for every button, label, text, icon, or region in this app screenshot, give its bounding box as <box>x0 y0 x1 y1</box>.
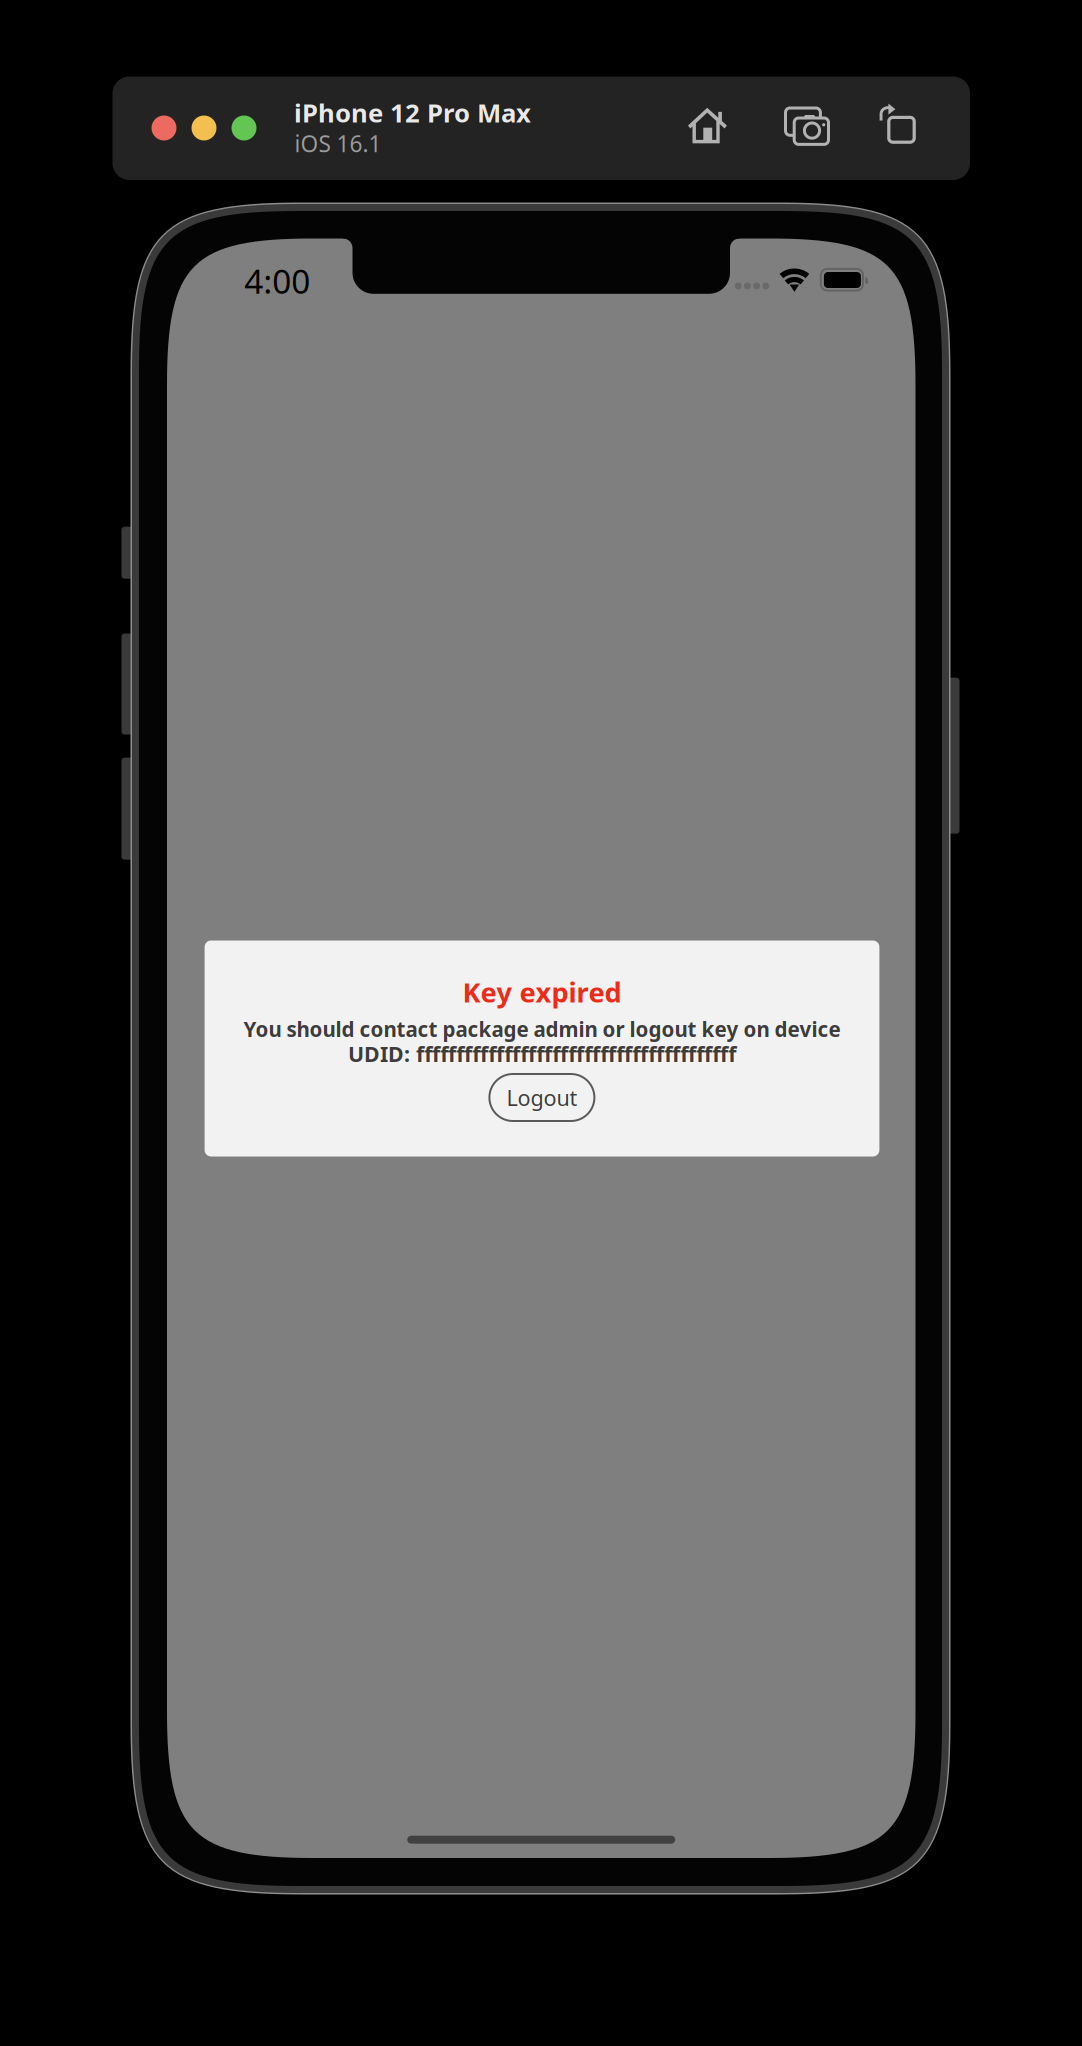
staticText: iPhone 12 Pro Max <box>294 95 531 130</box>
staticText: Logout <box>506 1083 577 1112</box>
button[interactable]: Zoom <box>231 115 256 140</box>
button[interactable]: Screenshot <box>785 108 828 144</box>
button[interactable]: Minimize <box>191 115 216 140</box>
staticText: UDID: ffffffffffffffffffffffffffffffffff… <box>348 1039 736 1068</box>
button[interactable]: Close <box>151 115 176 140</box>
staticText: 4:00 <box>244 258 310 303</box>
button[interactable]: Home <box>688 108 727 144</box>
button[interactable]: Logout <box>489 1074 594 1121</box>
staticText: You should contact package admin or logo… <box>243 1015 840 1043</box>
button[interactable]: Rotate <box>878 101 916 143</box>
staticText: iOS 16.1 <box>294 128 381 159</box>
staticText: Key expired <box>462 973 621 1010</box>
